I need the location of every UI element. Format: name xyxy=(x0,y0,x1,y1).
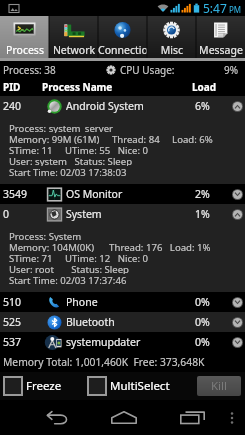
button[interactable]: Connectio xyxy=(98,16,147,58)
staticText: 9% xyxy=(224,63,239,77)
button[interactable]: More options xyxy=(219,400,245,435)
staticText: Android System xyxy=(66,99,144,113)
button[interactable]: Back xyxy=(36,400,76,435)
button[interactable]: 510 xyxy=(0,292,245,312)
staticText: Network xyxy=(43,43,105,57)
staticText: Message xyxy=(190,43,245,57)
staticText: Freeze xyxy=(26,378,62,394)
button[interactable]: MultiSelect xyxy=(87,376,173,396)
staticText: OS Monitor xyxy=(66,187,123,201)
staticText: Bluetooth xyxy=(66,315,115,329)
button[interactable]: 0 xyxy=(0,204,245,224)
staticText: Connectio xyxy=(92,43,154,57)
staticText: PM xyxy=(229,4,242,15)
staticText: Process Name xyxy=(42,80,113,94)
staticText: System xyxy=(66,207,102,221)
button[interactable]: Process xyxy=(0,16,49,58)
staticText: STime: 71 UTime: 12 Nice: 0 xyxy=(9,252,149,263)
button[interactable]: Message xyxy=(196,16,245,58)
staticText: PID xyxy=(3,80,21,94)
staticText: 537 xyxy=(3,335,22,349)
staticText: systemupdater xyxy=(66,335,141,349)
button[interactable]: 537 xyxy=(0,332,245,352)
staticText: 3549 xyxy=(3,187,28,201)
staticText: Start Time: 02/03 17:38:03 xyxy=(9,166,127,177)
button[interactable]: Kill xyxy=(197,376,241,396)
staticText: Process: system_server xyxy=(9,122,114,133)
button[interactable]: Misc xyxy=(147,16,196,58)
button[interactable]: Home xyxy=(104,400,144,435)
staticText: 525 xyxy=(3,315,22,329)
button[interactable]: Recent apps xyxy=(172,400,212,435)
button[interactable]: Freeze xyxy=(3,376,65,396)
staticText: 510 xyxy=(3,295,22,309)
staticText: MultiSelect xyxy=(110,378,170,394)
staticText: 2% xyxy=(195,187,210,201)
staticText: 0% xyxy=(195,315,210,329)
button[interactable]: Network xyxy=(49,16,98,58)
staticText: 0% xyxy=(195,335,210,349)
staticText: 0% xyxy=(195,295,210,309)
staticText: Process xyxy=(0,43,56,57)
staticText: Memory: 104M(0K) Thread: 176 Load: 1% xyxy=(9,241,211,252)
staticText: Memory Total: 1,001,460K Free: 373,648K xyxy=(3,355,205,369)
button[interactable]: 3549 xyxy=(0,184,245,204)
staticText: 0 xyxy=(3,207,10,221)
staticText: Start Time: 02/03 17:37:46 xyxy=(9,274,127,285)
staticText: 5:47 xyxy=(203,0,227,16)
staticText: Kill xyxy=(211,378,228,394)
staticText: User: system Status: Sleep xyxy=(9,155,133,166)
button[interactable]: 240 xyxy=(0,96,245,116)
staticText: Phone xyxy=(66,295,98,309)
staticText: CPU Usage: xyxy=(120,63,175,77)
staticText: Misc xyxy=(141,43,203,57)
staticText: Memory: 99M (61M) Thread: 84 Load: 6% xyxy=(9,133,213,144)
button[interactable]: 525 xyxy=(0,312,245,332)
staticText: Process: 38 xyxy=(3,63,56,77)
staticText: Load xyxy=(192,80,217,94)
staticText: 240 xyxy=(3,99,22,113)
staticText: Process: System xyxy=(9,230,82,241)
staticText: 1% xyxy=(195,207,210,221)
staticText: User: root Status: Sleep xyxy=(9,263,129,274)
staticText: STime: 11 UTime: 55 Nice: 0 xyxy=(9,144,149,155)
staticText: 6% xyxy=(195,99,210,113)
